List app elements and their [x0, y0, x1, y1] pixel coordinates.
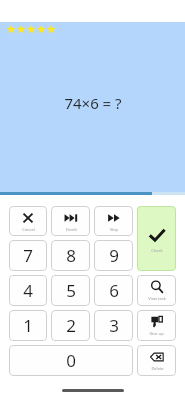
staticText: 8: [66, 244, 76, 267]
staticText: Skip: [110, 227, 118, 232]
staticText: 9: [109, 244, 119, 267]
button[interactable]: View task: [137, 275, 176, 306]
button[interactable]: Check: [137, 206, 176, 271]
button[interactable]: Skip: [94, 206, 133, 236]
staticText: 1: [23, 314, 33, 337]
button[interactable]: 5: [51, 275, 90, 306]
staticText: Give up: [149, 331, 164, 336]
staticText: 2: [66, 314, 76, 337]
button[interactable]: 2: [51, 310, 90, 341]
staticText: 74×6 = ?: [64, 93, 122, 113]
staticText: 7: [23, 244, 33, 267]
button[interactable]: 9: [94, 240, 133, 271]
button[interactable]: Cancel: [9, 206, 47, 236]
button[interactable]: 4: [9, 275, 47, 306]
staticText: Finish: [66, 227, 77, 232]
button[interactable]: 1: [9, 310, 47, 341]
button[interactable]: 0: [9, 345, 133, 376]
staticText: 4: [23, 279, 33, 302]
button[interactable]: Finish: [51, 206, 90, 236]
button[interactable]: 8: [51, 240, 90, 271]
button[interactable]: 6: [94, 275, 133, 306]
staticText: Cancel: [22, 227, 35, 232]
staticText: 3: [109, 314, 119, 337]
staticText: 0: [66, 349, 76, 372]
staticText: Check: [151, 248, 163, 253]
staticText: 5: [66, 279, 76, 302]
button[interactable]: Give up: [137, 310, 176, 341]
button[interactable]: Delete: [137, 345, 176, 376]
staticText: View task: [148, 296, 166, 301]
staticText: 6: [109, 279, 119, 302]
staticText: Delete: [151, 366, 164, 371]
button[interactable]: 3: [94, 310, 133, 341]
button[interactable]: 7: [9, 240, 47, 271]
